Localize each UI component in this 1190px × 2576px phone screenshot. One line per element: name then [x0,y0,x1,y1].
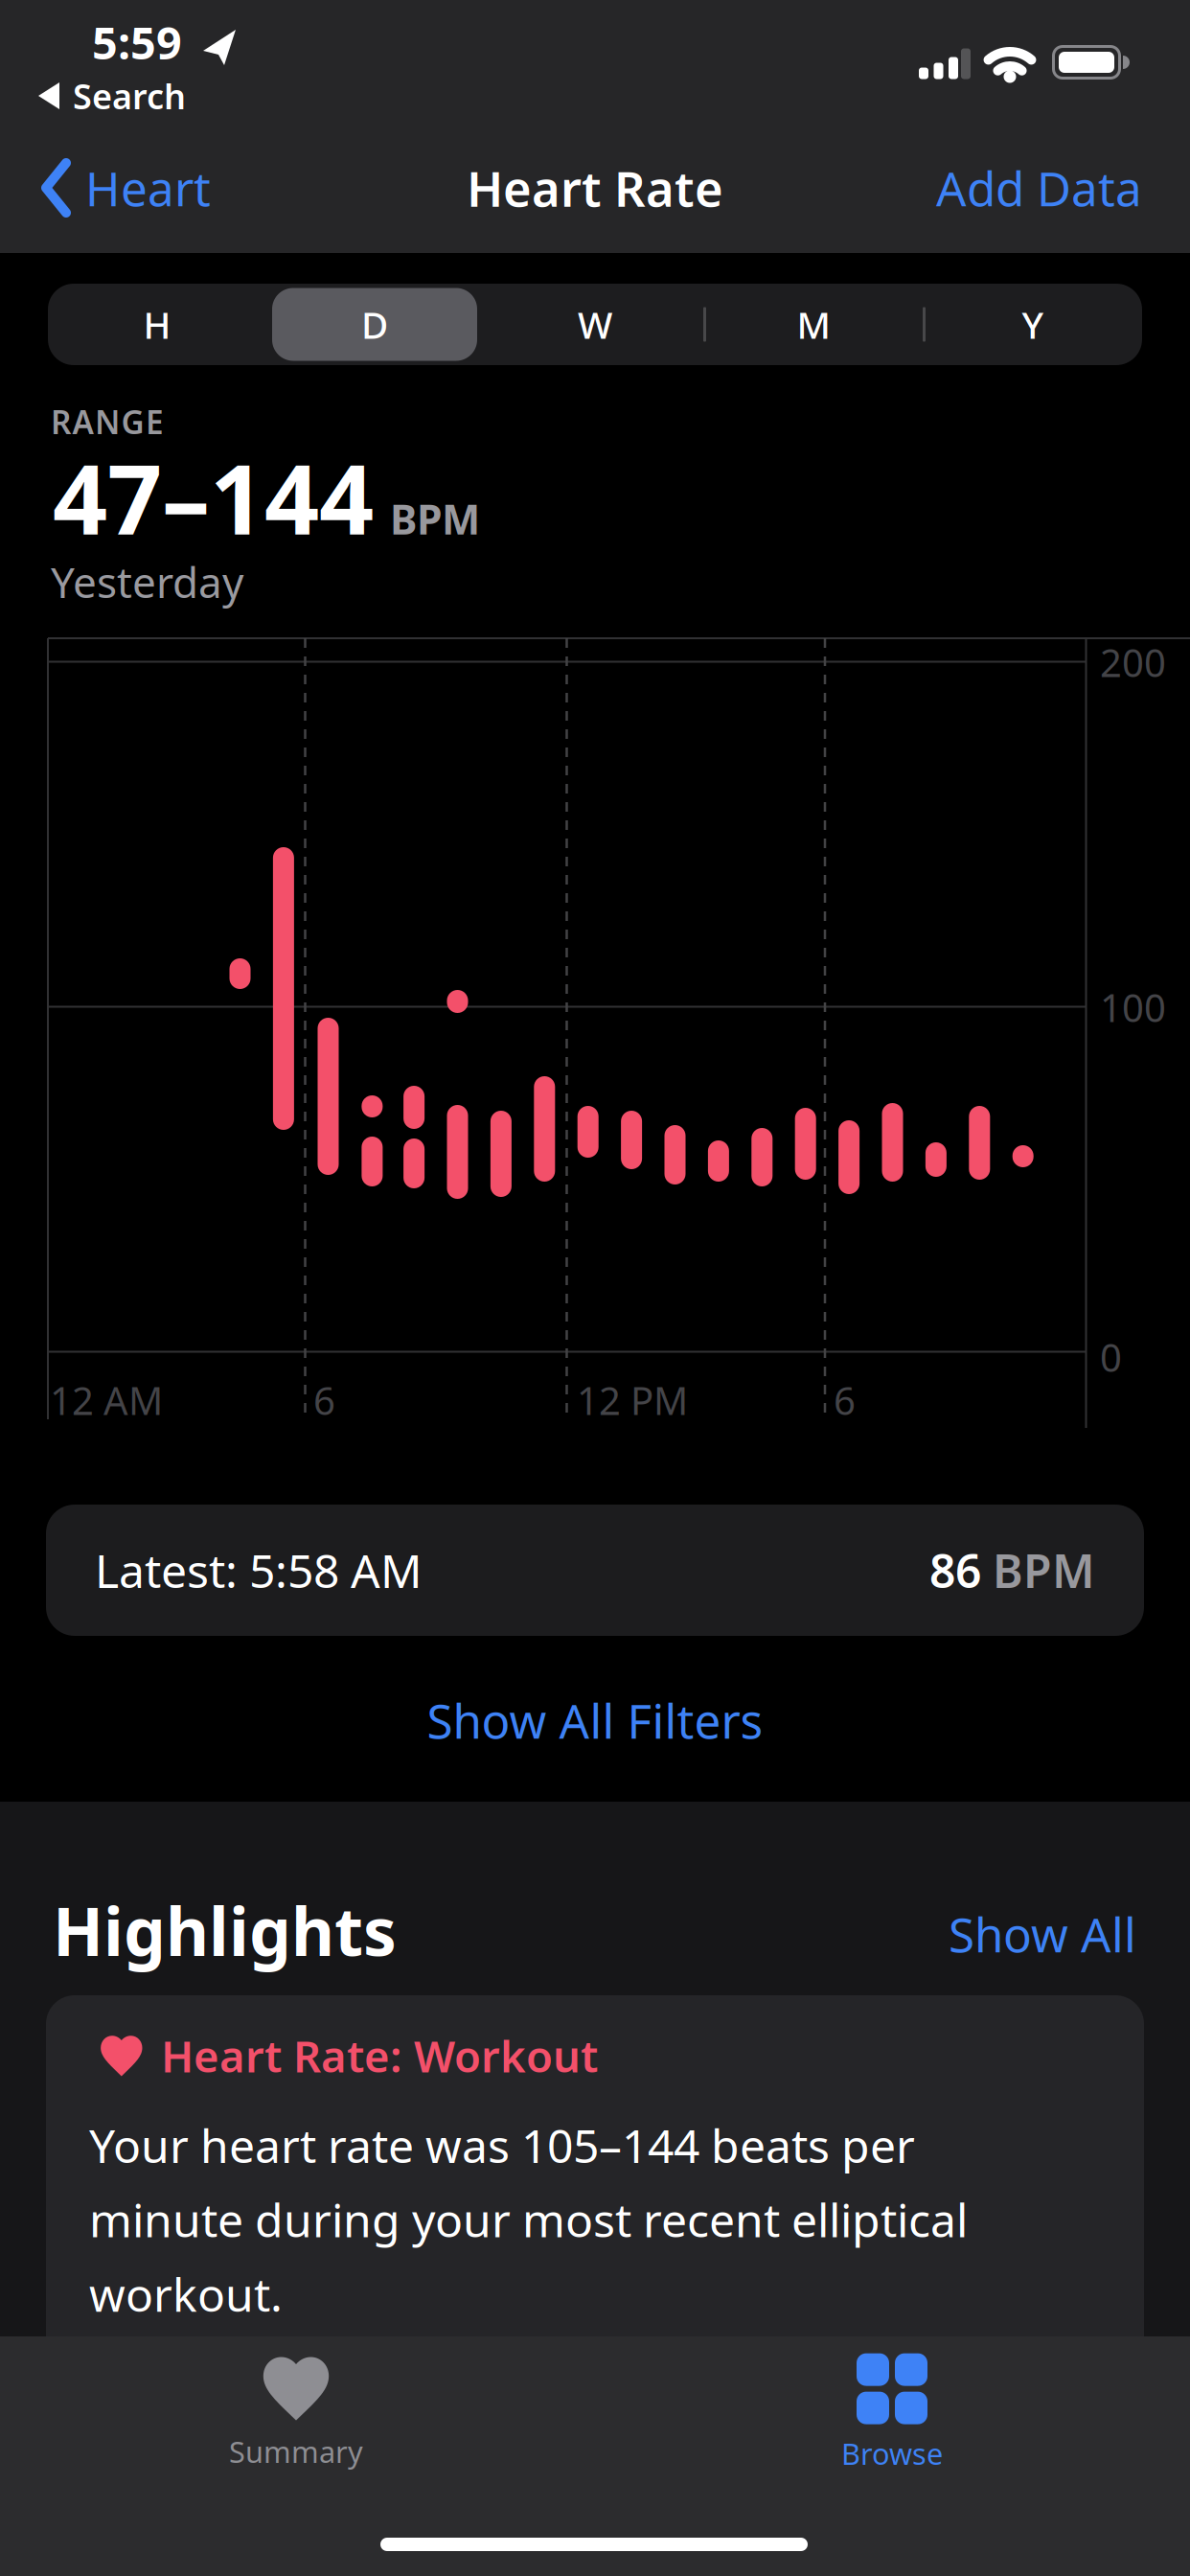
staticText: Search [73,73,186,119]
staticText: Show All Filters [427,1689,763,1752]
button[interactable]: Heart Rate: Workout [46,1995,1144,2379]
staticText: 47–144 [53,434,374,561]
button[interactable]: H [61,286,253,363]
staticText: BPM [390,492,480,546]
button[interactable]: Y [937,286,1129,363]
button[interactable]: Show All Filters [427,1689,763,1752]
staticText: 12 PM [577,1375,688,1426]
staticText: Your heart rate was 105–144 beats per mi… [89,2114,968,2325]
staticText: BPM [981,1540,1095,1601]
staticText: Highlights [53,1886,397,1974]
staticText: M [797,300,830,349]
button[interactable]: Heart [40,158,261,218]
staticText: 12 AM [50,1375,163,1426]
staticText: Heart Rate [467,156,723,220]
staticText: RANGE [51,400,164,443]
staticText: Heart Rate: Workout [161,2027,598,2084]
staticText: Y [1022,300,1044,349]
staticText: 86 [929,1540,981,1601]
staticText: 100 [1100,982,1166,1033]
staticText: 5:59 [92,12,182,72]
staticText: Yesterday [51,554,243,610]
button[interactable]: Show All [849,1902,1136,1965]
staticText: Show All [949,1902,1136,1965]
staticText: 6 [313,1375,335,1426]
staticText: Summary [229,2432,363,2471]
staticText: H [143,300,171,349]
staticText: Latest: 5:58 AM [95,1540,423,1601]
staticText: D [361,300,388,349]
staticText: 200 [1100,637,1166,688]
staticText: 0 [1100,1332,1122,1382]
button[interactable]: Add Data [855,156,1142,219]
button[interactable]: M [718,286,909,363]
button[interactable]: D [279,286,470,363]
button[interactable]: Summary [104,2346,488,2480]
staticText: Browse [841,2434,943,2473]
button[interactable]: W [499,286,691,363]
staticText: 6 [834,1375,856,1426]
staticText: Heart [85,156,211,219]
staticText: W [578,300,612,349]
button[interactable]: Browse [700,2346,1084,2480]
staticText: Add Data [936,156,1142,219]
